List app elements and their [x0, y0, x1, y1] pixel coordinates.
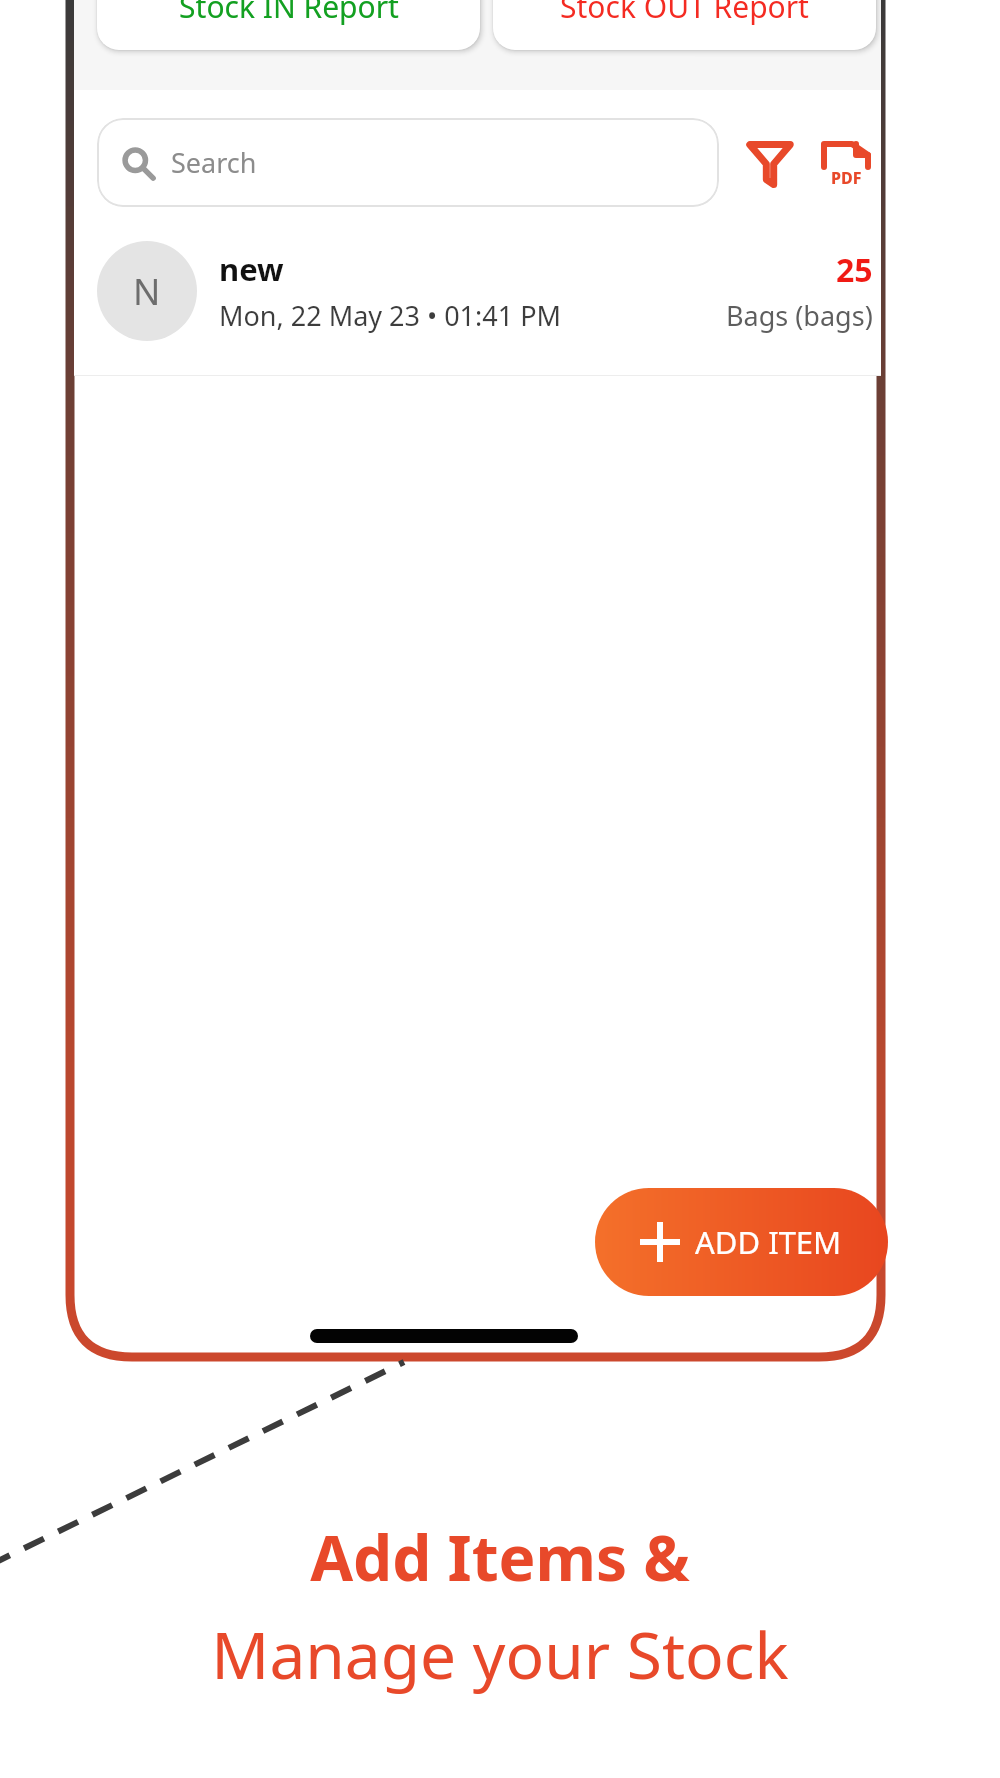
- staticText: Stock IN Report: [179, 0, 399, 27]
- staticText: Manage your Stock: [211, 1611, 789, 1698]
- staticText: Mon, 22 May 23 • 01:41 PM: [219, 297, 562, 334]
- button[interactable]: Stock OUT Report: [493, 0, 876, 50]
- button[interactable]: Filter: [739, 132, 801, 194]
- staticText: Search: [171, 144, 257, 181]
- staticText: new: [219, 248, 284, 290]
- button[interactable]: N: [74, 207, 881, 375]
- staticText: PDF: [831, 167, 862, 189]
- staticText: N: [133, 267, 161, 316]
- staticText: Bags (bags): [726, 297, 873, 334]
- staticText: ADD ITEM: [695, 1221, 842, 1263]
- button[interactable]: Stock IN Report: [97, 0, 480, 50]
- button[interactable]: Export PDF: [815, 132, 877, 194]
- button[interactable]: Search: [97, 118, 719, 207]
- staticText: Add Items &: [310, 1515, 690, 1599]
- button[interactable]: ADD ITEM: [595, 1188, 888, 1296]
- staticText: Stock OUT Report: [560, 0, 809, 27]
- staticText: 25: [836, 248, 873, 292]
